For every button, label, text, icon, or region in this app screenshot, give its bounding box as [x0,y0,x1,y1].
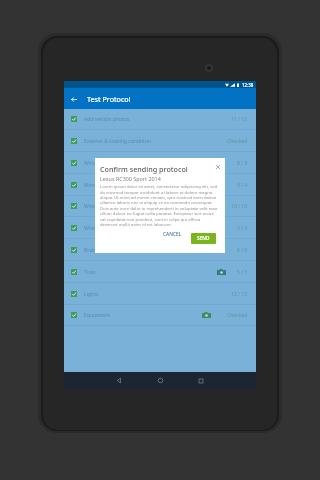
staticText: cillum dolore eu fugiat nulla pariatur. … [100,211,214,217]
button[interactable]: Recent apps [191,372,211,389]
staticText: Add vehicle photos [84,116,130,123]
staticText: Wipers [84,203,101,210]
staticText: Lights [84,291,99,298]
staticText: Tires [84,269,96,276]
button[interactable]: Photos [202,312,211,318]
button[interactable]: Home [150,372,170,389]
button[interactable]: SEND [191,233,216,244]
staticText: Brakes [84,247,101,254]
button[interactable]: Brakes [64,239,256,261]
staticText: 8 / 8 [237,160,248,167]
staticText: Lorem ipsum dolor sit amet, consectetur … [100,184,218,190]
button[interactable]: Windscreen [64,152,256,174]
staticText: Lexus RC300 Sport 2014 [100,175,161,182]
button[interactable]: Exterior & coating condition [64,130,256,152]
staticText: 12 / 12 [231,291,248,298]
staticText: Test Protocol [87,94,131,104]
button[interactable]: Wipers [64,195,256,217]
staticText: Windscreen [84,160,113,167]
staticText: Checked [227,312,248,319]
button[interactable]: Close [213,162,223,172]
staticText: 5 / 5 [237,225,248,232]
staticText: SEND [197,235,210,242]
staticText: do eiusmod tempor incididunt ut labore e… [100,190,213,196]
staticText: Mirrors [84,182,102,189]
staticText: Exterior & coating condition [84,138,151,145]
staticText: aliqua. Ut enim ad minim veniam, quis no… [100,195,217,201]
staticText: 12:38 [242,82,254,88]
button[interactable]: Add vehicle photos [64,108,256,130]
button[interactable]: Back [68,93,80,105]
button[interactable]: Photos [217,269,226,275]
staticText: 4 / 4 [237,182,248,189]
button[interactable]: Lights [64,283,256,305]
staticText: CANCEL [163,231,182,238]
button[interactable]: CANCEL [163,228,182,241]
staticText: 11 / 12 [231,116,248,123]
staticText: 5 / 5 [237,269,248,276]
button[interactable]: Back [109,372,129,389]
button[interactable]: Tires [64,261,256,283]
staticText: Checked [227,138,248,145]
staticText: Equipment [84,312,111,319]
staticText: 10 / 10 [231,203,248,210]
staticText: Wheels [84,225,102,232]
button[interactable]: Wheels [64,217,256,239]
staticText: Confirm sending protocol [100,164,188,174]
button[interactable]: Mirrors [64,174,256,196]
staticText: 6 / 6 [237,247,248,254]
staticText: deserunt mollit anim id est laborum. [100,222,172,228]
staticText: Duis aute irure dolor in reprehenderit i… [100,206,218,212]
staticText: ullamco laboris nisi ut aliquip ex ea co… [100,200,213,206]
staticText: cat cupidatat non proident, sunt in culp… [100,217,200,223]
button[interactable]: Equipment [64,304,256,326]
